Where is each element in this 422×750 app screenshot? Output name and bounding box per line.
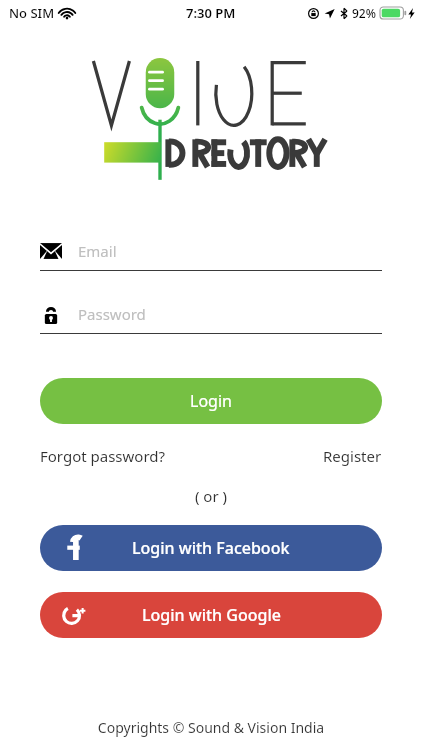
staticText: Copyrights © Sound & Vision India <box>0 718 422 737</box>
button[interactable]: Forgot password? <box>40 446 166 466</box>
staticText: 7:30 PM <box>186 4 236 22</box>
button[interactable]: Login <box>40 378 382 424</box>
staticText: Login with Google <box>142 604 281 626</box>
staticText: No SIM <box>9 4 55 22</box>
staticText: Login with Facebook <box>132 537 290 559</box>
button[interactable]: Login with Facebook <box>40 525 382 571</box>
staticText: Login <box>190 390 232 412</box>
staticText: Email <box>78 241 117 261</box>
staticText: Register <box>323 446 382 466</box>
button[interactable]: Register <box>323 446 382 466</box>
staticText: 92% <box>352 5 376 21</box>
staticText: ( or ) <box>0 486 422 506</box>
button[interactable]: Login with Google <box>40 592 382 638</box>
staticText: Password <box>78 304 146 324</box>
staticText: Forgot password? <box>40 446 166 466</box>
